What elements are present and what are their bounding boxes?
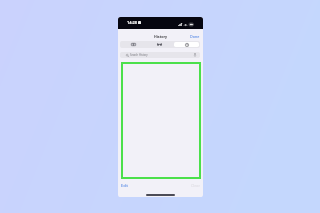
other: Voice search [194,53,196,57]
button[interactable]: Clear [191,183,200,188]
staticText: History [154,34,168,39]
button[interactable]: Edit [121,183,128,188]
button[interactable]: History [174,42,199,47]
button[interactable]: Bookmarks [121,42,145,47]
staticText: 14:28 [127,20,137,25]
button[interactable]: Reading List [147,42,172,47]
staticText: Search History [130,53,148,57]
button[interactable]: Done [190,34,200,39]
button[interactable]: Search History [120,52,200,58]
